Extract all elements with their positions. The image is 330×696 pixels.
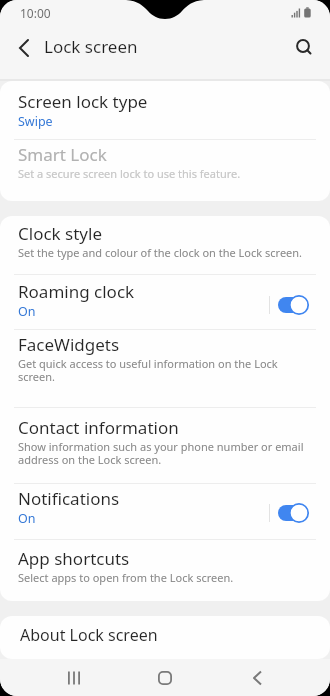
button[interactable] <box>10 34 40 64</box>
staticText: Get quick access to useful information o… <box>18 356 278 384</box>
button[interactable]: Screen lock type <box>0 81 330 139</box>
button[interactable]: Notifications <box>0 484 330 539</box>
staticText: Contact information <box>18 416 179 439</box>
button[interactable]: Contact information <box>0 408 330 483</box>
button[interactable]: FaceWidgets <box>0 330 330 407</box>
staticText: Show information such as your phone numb… <box>18 439 304 467</box>
button[interactable] <box>55 664 95 692</box>
staticText: About Lock screen <box>20 624 158 646</box>
staticText: App shortcuts <box>18 547 130 570</box>
staticText: On <box>18 303 36 320</box>
button[interactable] <box>240 664 280 692</box>
staticText: Screen lock type <box>18 90 148 113</box>
staticText: Swipe <box>18 113 53 130</box>
staticText: Select apps to open from the Lock screen… <box>18 570 234 585</box>
staticText: Notifications <box>18 487 120 510</box>
staticText: FaceWidgets <box>18 333 120 356</box>
button[interactable] <box>293 37 315 59</box>
staticText: 10:00 <box>20 5 51 21</box>
staticText: Smart Lock <box>18 143 107 166</box>
button[interactable]: App shortcuts <box>0 540 330 601</box>
button[interactable]: Smart Lock <box>0 140 330 201</box>
staticText: Roaming clock <box>18 280 135 303</box>
staticText: Set the type and colour of the clock on … <box>18 245 303 260</box>
button[interactable]: Roaming clock <box>0 275 330 329</box>
button[interactable]: Clock style <box>0 216 330 274</box>
button[interactable] <box>145 664 185 692</box>
staticText: Set a secure screen lock to use this fea… <box>18 166 241 181</box>
staticText: Lock screen <box>44 35 138 58</box>
staticText: On <box>18 510 36 527</box>
button[interactable]: About Lock screen <box>0 616 330 659</box>
staticText: Clock style <box>18 222 102 245</box>
